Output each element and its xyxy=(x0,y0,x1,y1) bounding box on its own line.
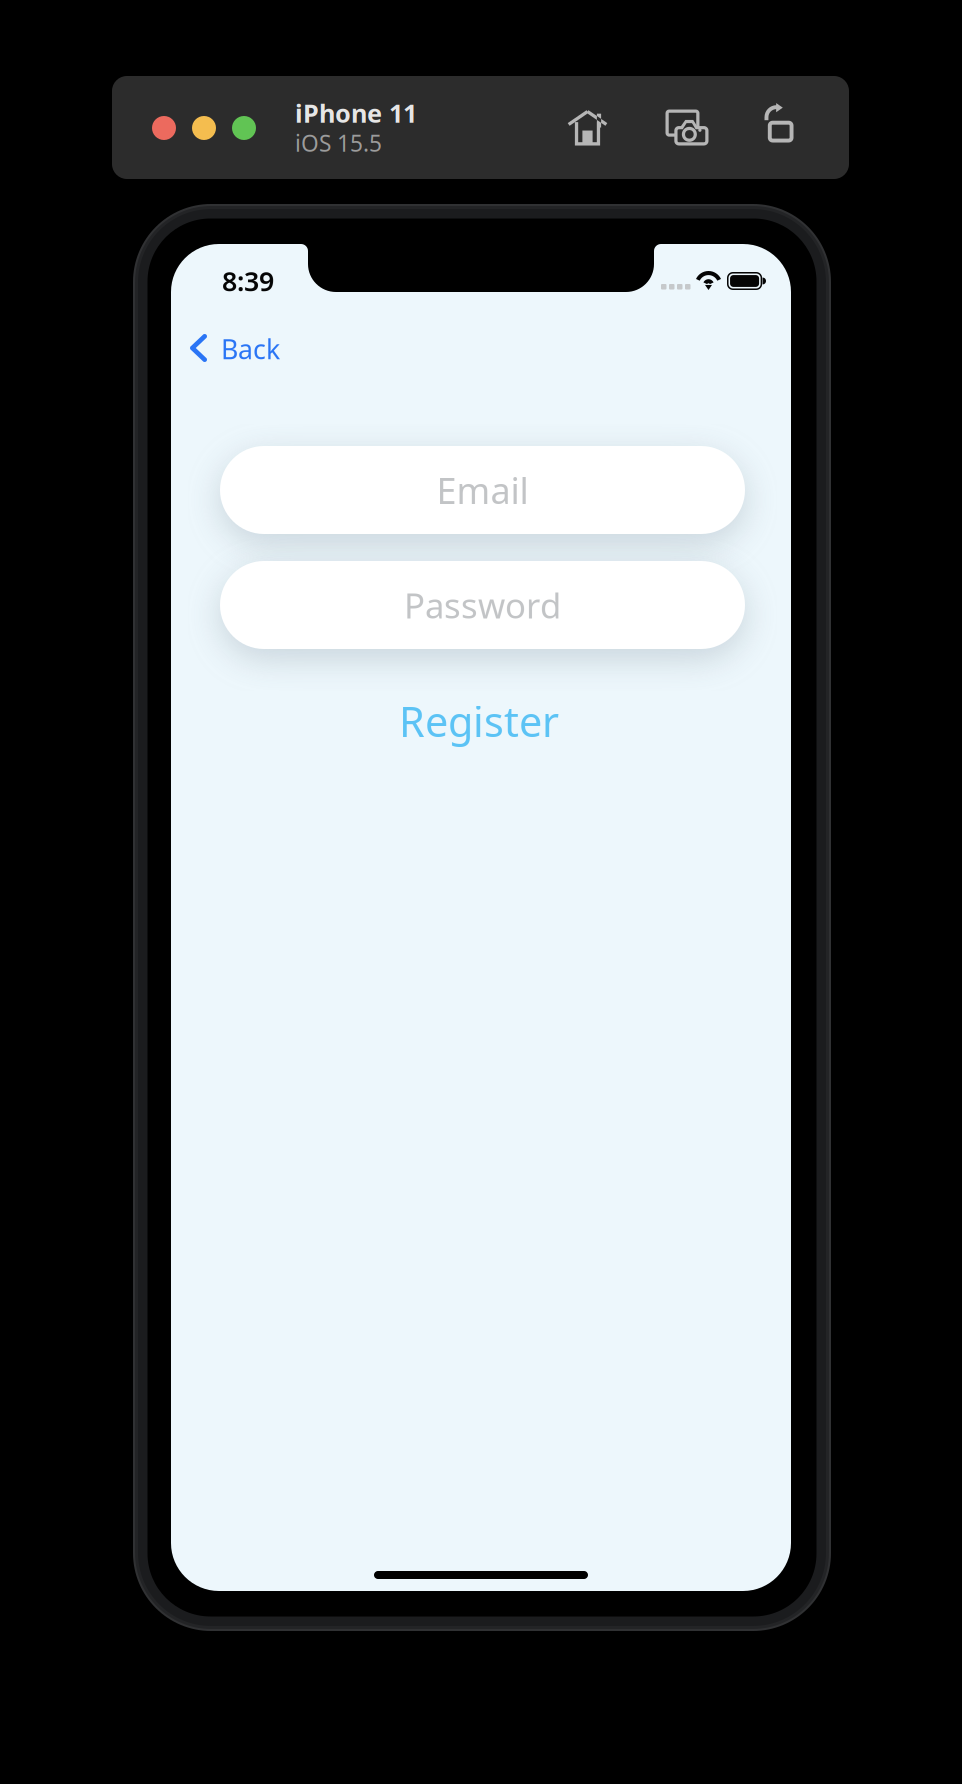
button[interactable]: Back xyxy=(171,317,371,381)
staticText: 8:39 xyxy=(222,263,274,299)
staticText: Email xyxy=(436,466,528,514)
button[interactable]: Password xyxy=(220,561,745,649)
staticText: Back xyxy=(221,331,280,367)
button[interactable]: Home xyxy=(542,76,632,179)
button[interactable]: Email xyxy=(220,446,745,534)
staticText: iPhone 11 xyxy=(295,96,417,130)
staticText: Register xyxy=(399,694,559,748)
staticText: iOS 15.5 xyxy=(295,128,382,158)
staticText: Password xyxy=(404,582,561,628)
button[interactable]: Rotate xyxy=(731,74,821,177)
button[interactable]: Register xyxy=(349,690,609,752)
button[interactable]: Screenshot xyxy=(642,76,732,179)
